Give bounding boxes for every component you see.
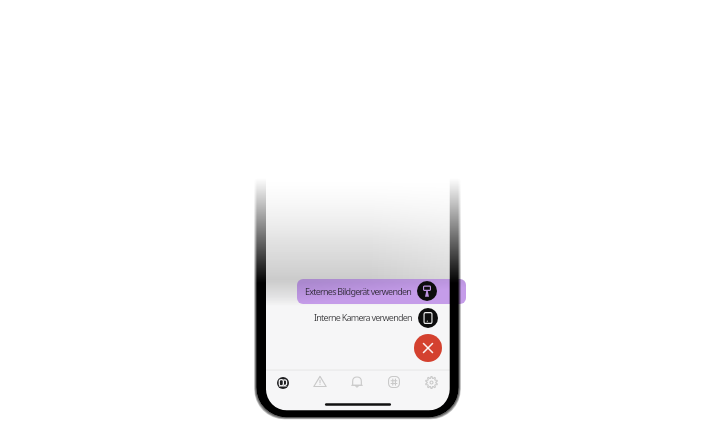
button[interactable]: Schließen [414,334,442,362]
button[interactable]: Externes Bildgerät verwenden [417,281,437,301]
button[interactable]: Kontakte [268,368,298,398]
staticText: Interne Kamera verwenden [314,311,412,323]
button[interactable]: Interne Kamera verwenden [418,308,438,328]
button[interactable] [297,279,466,304]
staticText: Externes Bildgerät verwenden [305,285,412,297]
button[interactable]: Einstellungen [416,367,446,397]
button[interactable]: Benachrichtigungen [342,367,372,397]
button[interactable]: Tastenfeld [379,367,409,397]
button[interactable]: Warnungen [305,367,335,397]
